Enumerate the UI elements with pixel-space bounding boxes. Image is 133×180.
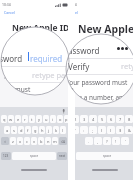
staticText: Password: [75, 46, 87, 52]
staticText: space: [30, 154, 39, 158]
button[interactable]: s: [11, 126, 17, 134]
button[interactable]: 5: [98, 115, 106, 123]
staticText: b: [40, 139, 43, 144]
staticText: n: [47, 139, 50, 144]
staticText: i: [52, 117, 54, 122]
button[interactable]: k: [53, 126, 59, 134]
staticText: d: [20, 128, 23, 133]
staticText: 4: [92, 117, 95, 122]
button[interactable]: b: [38, 137, 44, 145]
staticText: word must: [1, 85, 31, 94]
button[interactable]: ?: [103, 137, 111, 145]
button[interactable]: g: [32, 126, 38, 134]
staticText: $: [119, 128, 122, 133]
button[interactable]: .: [85, 137, 93, 145]
button[interactable]: ': [121, 137, 129, 145]
staticText: s: [13, 128, 15, 133]
button[interactable]: /: [75, 126, 79, 134]
staticText: r: [24, 117, 26, 122]
button[interactable]: ;: [89, 126, 97, 134]
staticText: ⌫: [61, 140, 66, 143]
staticText: ': [125, 139, 126, 144]
staticText: 6: [110, 117, 113, 122]
button[interactable]: space: [12, 152, 56, 160]
staticText: space: [103, 154, 112, 158]
button[interactable]: h: [39, 126, 45, 134]
staticText: retype pa: [32, 70, 66, 80]
staticText: /: [75, 128, 76, 133]
staticText: g: [34, 128, 37, 133]
staticText: required: [30, 53, 63, 64]
staticText: :: [83, 128, 85, 133]
button[interactable]: Verify: [75, 54, 133, 65]
staticText: .: [88, 139, 90, 144]
button[interactable]: Cancel: [75, 10, 78, 15]
button[interactable]: 4: [89, 115, 97, 123]
button[interactable]: !: [112, 137, 120, 145]
button[interactable]: w: [8, 115, 14, 123]
button[interactable]: r: [22, 115, 28, 123]
button[interactable]: x: [17, 137, 23, 145]
button[interactable]: $: [116, 126, 124, 134]
button[interactable]: :: [80, 126, 88, 134]
staticText: ): [110, 128, 112, 133]
staticText: m: [53, 139, 57, 144]
button[interactable]: 8: [125, 115, 133, 123]
other: Dictate: [62, 109, 65, 114]
staticText: t: [31, 117, 33, 122]
button[interactable]: e: [15, 115, 21, 123]
staticText: 7: [119, 117, 122, 122]
button[interactable]: c: [24, 137, 30, 145]
button[interactable]: 3: [80, 115, 88, 123]
button[interactable]: o: [57, 115, 63, 123]
staticText: p: [65, 117, 68, 122]
button[interactable]: next: [57, 152, 67, 160]
button[interactable]: &: [125, 126, 133, 134]
button[interactable]: Cancel: [4, 10, 15, 15]
button[interactable]: ⇧: [1, 137, 9, 145]
button[interactable]: d: [18, 126, 24, 134]
staticText: next: [59, 154, 66, 158]
staticText: 10:34: [75, 2, 77, 7]
button[interactable]: Password: [75, 43, 133, 54]
staticText: 8: [128, 117, 131, 122]
staticText: 3: [83, 117, 86, 122]
button[interactable]: ,: [94, 137, 102, 145]
button[interactable]: v: [31, 137, 37, 145]
button[interactable]: p: [64, 115, 68, 123]
staticText: &: [128, 128, 131, 133]
staticText: New Apple ID: [78, 22, 133, 36]
button[interactable]: m: [52, 137, 58, 145]
button[interactable]: n: [45, 137, 51, 145]
staticText: ;: [92, 128, 94, 133]
staticText: required: [105, 46, 123, 52]
button[interactable]: 6: [107, 115, 115, 123]
button[interactable]: 2: [75, 115, 79, 123]
button[interactable]: l: [60, 126, 66, 134]
button[interactable]: 123: [1, 152, 11, 160]
staticText: ?: [106, 139, 108, 144]
button[interactable]: y: [36, 115, 42, 123]
button[interactable]: ): [107, 126, 115, 134]
button[interactable]: Password: [0, 43, 68, 54]
staticText: Verify: [4, 57, 14, 62]
button[interactable]: space: [76, 152, 133, 160]
button[interactable]: t: [29, 115, 35, 123]
button[interactable]: u: [43, 115, 49, 123]
button[interactable]: (: [98, 126, 106, 134]
button[interactable]: Verify: [0, 54, 68, 65]
staticText: c: [26, 139, 28, 144]
staticText: (: [101, 128, 103, 133]
staticText: Your password must be 8 or more characte…: [75, 68, 133, 83]
button[interactable]: z: [10, 137, 16, 145]
button[interactable]: q: [1, 115, 7, 123]
staticText: q: [3, 117, 6, 122]
button[interactable]: f: [25, 126, 31, 134]
button[interactable]: a: [4, 126, 10, 134]
button[interactable]: 7: [116, 115, 124, 123]
button[interactable]: i: [50, 115, 56, 123]
button[interactable]: ⌫: [59, 137, 67, 145]
staticText: 2: [75, 117, 77, 122]
button[interactable]: j: [46, 126, 52, 134]
